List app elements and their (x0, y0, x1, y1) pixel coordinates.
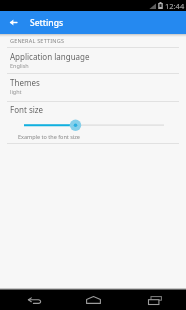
staticText: Example to the font size (18, 133, 80, 140)
staticText: Application language (10, 51, 90, 62)
staticText: 12:44 (165, 1, 185, 11)
staticText: English (10, 62, 29, 69)
button[interactable]: Home (62, 290, 124, 310)
staticText: Settings (30, 17, 64, 29)
staticText: Themes (10, 77, 40, 88)
staticText: GENERAL SETTINGS (10, 37, 65, 44)
button[interactable]: Navigate up (1, 11, 24, 34)
staticText: light (10, 88, 22, 95)
button[interactable]: Application language (0, 47, 186, 73)
button[interactable]: Themes (0, 73, 186, 101)
button[interactable]: Back (0, 290, 62, 310)
staticText: Font size (10, 104, 44, 115)
button[interactable] (0, 101, 186, 143)
button[interactable]: Recent apps (124, 290, 186, 310)
